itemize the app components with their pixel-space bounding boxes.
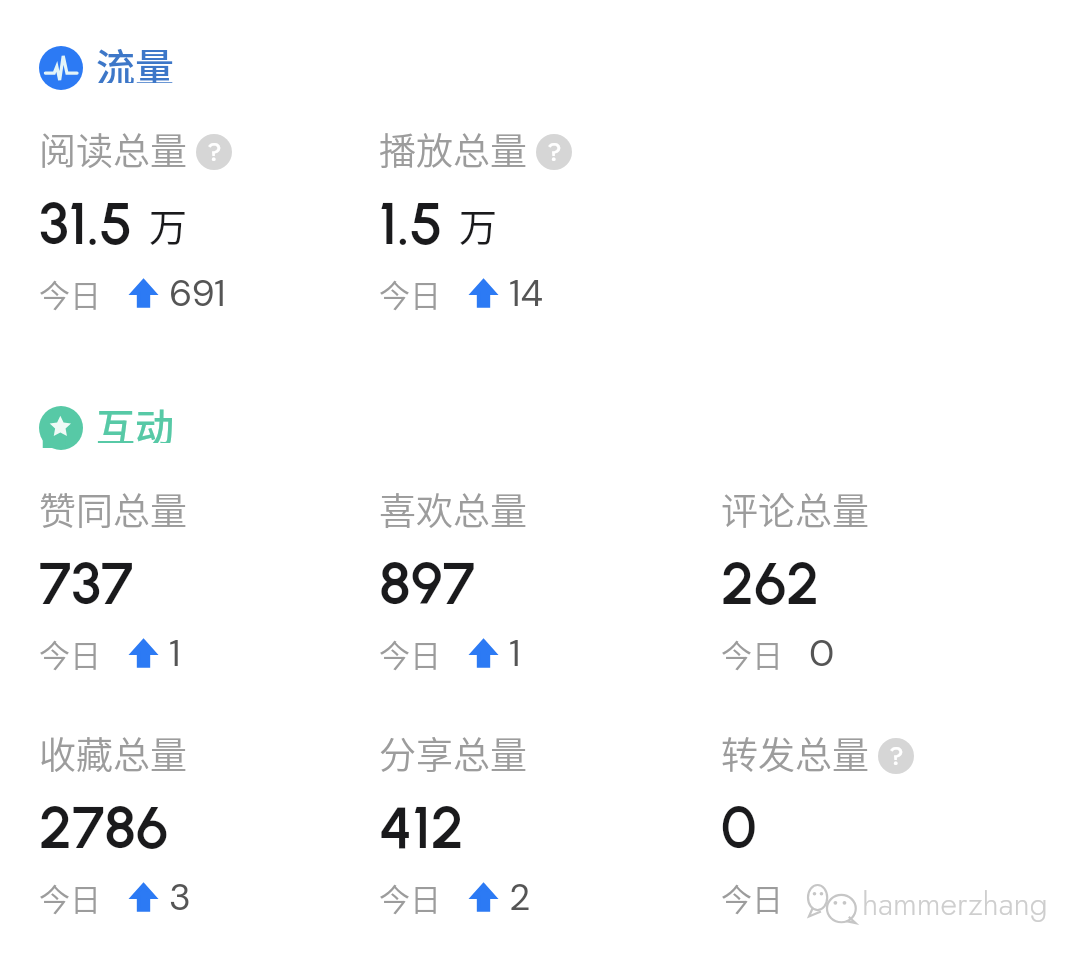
staticText: 412 <box>379 792 464 863</box>
staticText: 收藏总量 <box>39 726 187 780</box>
staticText: 1.5 <box>379 188 443 259</box>
staticText: 播放总量 <box>379 122 527 176</box>
staticText: ? <box>547 134 562 170</box>
staticText: 阅读总量 <box>39 122 187 176</box>
button[interactable]: 阅读总量 <box>39 128 339 298</box>
other: Traffic <box>39 46 83 90</box>
button[interactable]: 收藏总量 <box>39 732 339 902</box>
staticText: 0 <box>721 792 757 863</box>
button[interactable]: Info <box>536 134 572 170</box>
staticText: hammerzhang <box>862 881 1048 927</box>
button[interactable]: 评论总量 <box>721 488 1021 658</box>
staticText: 3 <box>169 873 191 921</box>
staticText: 今日 <box>379 271 441 316</box>
button[interactable]: Interaction <box>39 406 189 452</box>
button[interactable]: WeChat hammerzhang <box>800 888 1050 936</box>
button[interactable]: 赞同总量 <box>39 488 339 658</box>
staticText: 262 <box>721 548 820 619</box>
staticText: 互动 <box>96 397 175 443</box>
staticText: 今日 <box>379 875 441 920</box>
staticText: 万 <box>149 197 188 252</box>
button[interactable]: Info <box>196 134 232 170</box>
staticText: 1 <box>509 629 521 677</box>
staticText: 2 <box>509 873 531 921</box>
staticText: 1 <box>169 629 181 677</box>
staticText: 14 <box>509 269 544 317</box>
button[interactable]: 分享总量 <box>379 732 679 902</box>
staticText: ? <box>207 134 222 170</box>
staticText: 737 <box>39 548 134 619</box>
button[interactable]: Info <box>878 738 914 774</box>
staticText: 分享总量 <box>379 726 527 780</box>
staticText: 流量 <box>96 37 175 83</box>
staticText: 赞同总量 <box>39 482 187 536</box>
staticText: 今日 <box>39 875 101 920</box>
staticText: 2786 <box>39 792 169 863</box>
button[interactable]: 转发总量 <box>721 732 1021 902</box>
staticText: 0 <box>809 629 835 677</box>
staticText: 转发总量 <box>721 726 869 780</box>
staticText: 今日 <box>721 875 783 920</box>
staticText: 今日 <box>721 631 783 676</box>
other: Interaction <box>39 406 83 450</box>
staticText: 897 <box>379 548 475 619</box>
staticText: 今日 <box>379 631 441 676</box>
staticText: 691 <box>169 269 226 317</box>
staticText: 评论总量 <box>721 482 869 536</box>
button[interactable]: Traffic <box>39 46 189 92</box>
button[interactable]: 播放总量 <box>379 128 679 298</box>
button[interactable]: 喜欢总量 <box>379 488 679 658</box>
staticText: 喜欢总量 <box>379 482 527 536</box>
staticText: 万 <box>459 197 498 252</box>
staticText: 今日 <box>39 631 101 676</box>
staticText: ? <box>889 738 904 774</box>
staticText: 31.5 <box>39 188 133 259</box>
staticText: 今日 <box>39 271 101 316</box>
